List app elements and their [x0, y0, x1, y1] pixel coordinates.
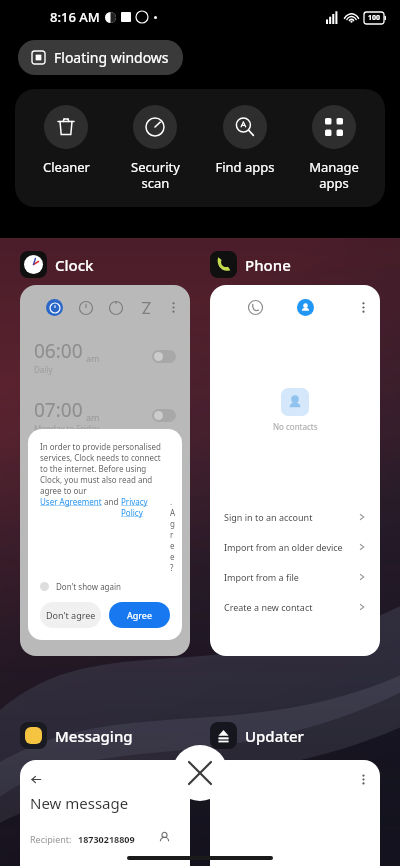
staticText: User Agreement — [40, 496, 102, 507]
staticText: Import from an older device — [224, 541, 343, 553]
staticText: and — [102, 496, 121, 507]
staticText: 07:00 — [34, 397, 83, 423]
button[interactable]: Floating windows — [18, 40, 183, 75]
staticText: Security scan — [131, 158, 180, 191]
button[interactable]: Manage apps — [295, 105, 373, 191]
staticText: am — [86, 411, 100, 423]
staticText: 06:00 — [34, 338, 83, 364]
staticText: Recipient: — [30, 833, 72, 845]
staticText: Daily — [34, 364, 53, 375]
staticText: 08:00 — [34, 456, 83, 482]
staticText: Sat Sun — [34, 482, 63, 493]
staticText: am — [86, 352, 100, 364]
button[interactable]: Security scan — [116, 105, 194, 191]
staticText: In order to provide personalised service… — [40, 441, 170, 496]
button[interactable]: Cleaner — [27, 105, 105, 176]
staticText: New message — [30, 793, 129, 813]
staticText: Agree — [127, 609, 152, 621]
staticText: Messaging — [55, 726, 133, 746]
button[interactable]: Close all — [172, 745, 228, 801]
button[interactable]: Clock — [20, 251, 190, 656]
staticText: Find apps — [215, 158, 275, 176]
staticText: No contacts — [273, 421, 318, 432]
button[interactable]: Sign in to an account — [210, 502, 380, 532]
staticText: Don't agree — [46, 609, 96, 621]
button[interactable]: Phone — [210, 251, 380, 656]
button[interactable]: Create a new contact — [210, 592, 380, 622]
staticText: Clock — [55, 255, 94, 275]
staticText: Create a new contact — [224, 601, 313, 613]
button[interactable]: Don't agree — [40, 602, 101, 628]
staticText: Updater — [245, 726, 304, 746]
staticText: am — [86, 470, 100, 482]
staticText: Don't show again — [56, 581, 122, 592]
button[interactable]: Find apps — [206, 105, 284, 176]
staticText: Sign in to an account — [224, 511, 313, 523]
staticText: Phone — [245, 255, 291, 275]
button[interactable]: Import from an older device — [210, 532, 380, 562]
button[interactable]: Messaging — [20, 722, 190, 749]
staticText: Monday to Friday — [34, 423, 100, 434]
staticText: Floating windows — [54, 48, 169, 67]
staticText: Privacy Policy — [121, 496, 170, 518]
button[interactable]: Agree — [109, 602, 170, 628]
staticText: 8:16 AM — [50, 8, 100, 26]
button[interactable]: Import from a file — [210, 562, 380, 592]
staticText: Import from a file — [224, 571, 299, 583]
staticText: 100 — [368, 13, 381, 23]
staticText: Manage apps — [309, 158, 359, 191]
button[interactable]: Updater — [210, 722, 380, 749]
staticText: Cleaner — [43, 158, 90, 176]
staticText: 18730218809 — [78, 833, 135, 845]
button[interactable]: Don't show again — [40, 581, 122, 592]
